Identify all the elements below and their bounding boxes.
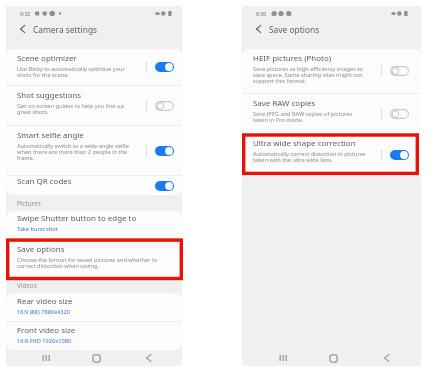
button[interactable]: Rear video size [6,293,182,321]
button[interactable]: Front video size [6,322,182,350]
button[interactable]: Switch off [6,86,182,125]
staticText: Save JPEG and RAW copies of pictures tak… [253,110,353,123]
staticText: Ultra wide shape correction [253,138,356,149]
staticText: 9:32 [20,10,31,17]
button[interactable]: Switch off [390,109,409,119]
staticText: Get on-screen guides to help you line up… [17,102,124,115]
button[interactable]: Switch off [390,66,409,76]
button[interactable]: Navigate up [20,22,31,36]
staticText: Save RAW copies [253,98,316,109]
staticText: 16:9 (8K) 7680x4320 [17,308,71,316]
button[interactable]: Switch on [155,62,174,72]
staticText: Save options [17,244,65,255]
button[interactable]: Navigate up [256,22,267,36]
button[interactable]: Switch off [242,49,421,93]
button[interactable]: Home [88,350,104,366]
button[interactable]: Back [378,350,394,366]
button[interactable]: Swipe Shutter button to edge to [6,211,182,238]
staticText: Rear video size [17,296,73,307]
staticText: Front video size [17,325,76,336]
staticText: Use Bixby to automatically optimize your… [17,65,125,78]
staticText: Smart selfie angle [17,130,84,141]
button[interactable]: Switch on [6,176,182,195]
button[interactable]: Switch on [6,49,182,85]
button[interactable]: Switch on [6,126,182,175]
staticText: Shot suggestions [17,90,82,101]
staticText: Scan QR codes [17,176,72,187]
button[interactable]: Switch on [155,181,174,191]
staticText: Scene optimizer [17,53,77,64]
staticText: 16:9 FHD 1920x1080 [17,337,72,345]
button[interactable]: Recent apps [275,350,291,366]
staticText: Save pictures as high efficiency images … [253,65,363,84]
button[interactable]: Home [325,350,341,366]
staticText: Videos [17,281,37,290]
staticText: Automatically correct distortion in pict… [253,150,366,163]
button[interactable]: Switch on [155,146,174,156]
staticText: Pictures [17,199,41,208]
button[interactable]: Back [140,350,156,366]
button[interactable]: Recent apps [38,350,54,366]
button[interactable]: Save options [6,239,182,278]
staticText: Take burst shot [17,225,58,233]
staticText: 9:30 [256,10,267,17]
button[interactable]: Switch off [242,94,421,133]
staticText: Camera settings [33,24,98,35]
staticText: HEIF pictures (Photo) [253,53,332,64]
button[interactable]: Switch off [155,101,174,111]
button[interactable]: Switch on [390,150,409,160]
staticText: Automatically switch to a wide-angle sel… [17,142,129,161]
button[interactable]: Switch on [242,134,421,176]
staticText: Choose the format for saved pictures and… [17,256,158,269]
staticText: Save options [269,24,320,35]
staticText: Swipe Shutter button to edge to [17,213,137,224]
